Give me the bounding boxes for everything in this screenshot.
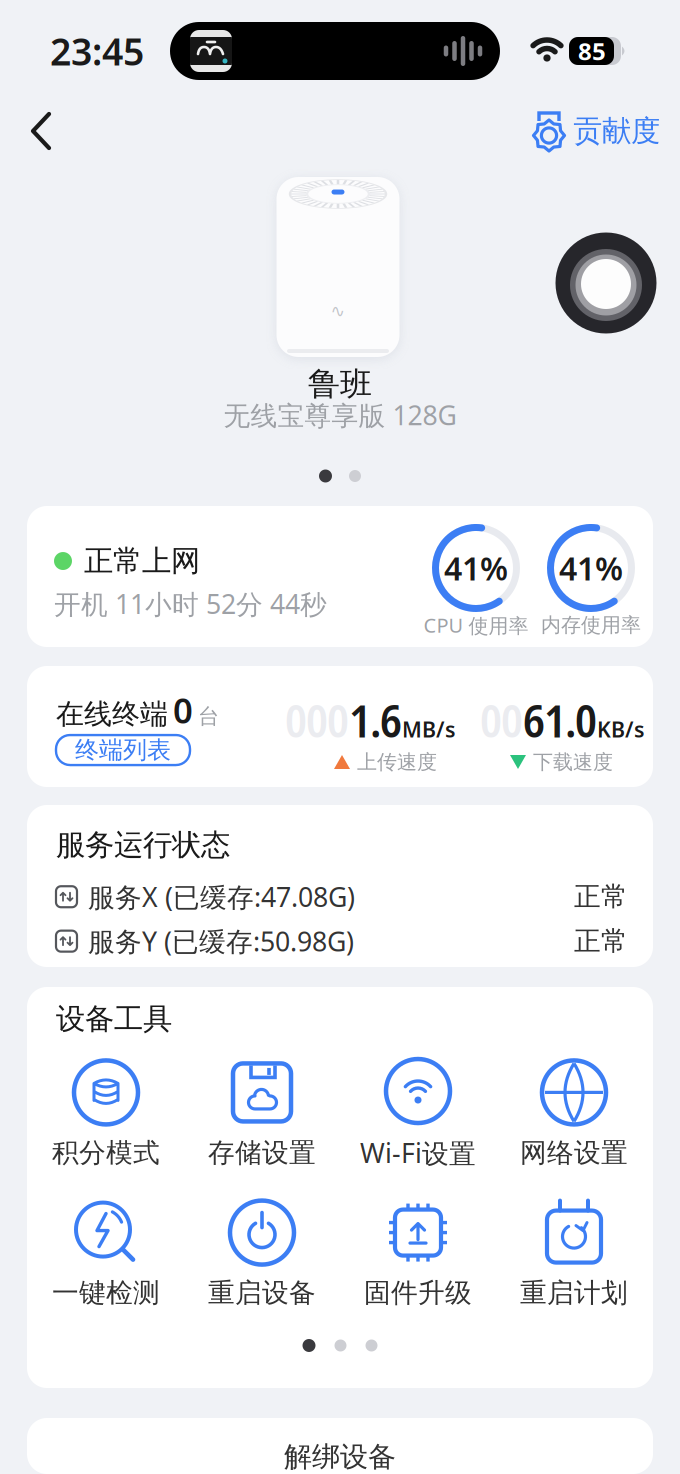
button[interactable]: Wi-Fi设置 bbox=[340, 1057, 496, 1171]
staticText: MB/s bbox=[402, 715, 456, 743]
staticText: 设备工具 bbox=[56, 1001, 172, 1037]
staticText: 下载速度 bbox=[533, 750, 613, 774]
staticText: 正常 bbox=[574, 880, 628, 913]
staticText: 41% bbox=[559, 547, 623, 589]
staticText: 61.0 bbox=[523, 690, 597, 750]
staticText: 重启计划 bbox=[520, 1277, 628, 1309]
staticText: KB/s bbox=[597, 715, 645, 743]
button[interactable]: Back bbox=[21, 102, 61, 160]
button[interactable]: 重启设备 bbox=[184, 1199, 340, 1309]
staticText: CPU 使用率 bbox=[423, 612, 528, 638]
button[interactable]: 贡献度 bbox=[530, 111, 660, 151]
staticText: 一键检测 bbox=[52, 1277, 160, 1309]
button[interactable]: 解绑设备 bbox=[27, 1418, 653, 1474]
staticText: 固件升级 bbox=[364, 1277, 472, 1309]
staticText: 解绑设备 bbox=[284, 1440, 396, 1474]
staticText: 23:45 bbox=[50, 26, 144, 76]
staticText: 无线宝尊享版 128G bbox=[223, 397, 456, 433]
button[interactable]: 存储设置 bbox=[184, 1058, 340, 1169]
staticText: 服务Y (已缓存:50.98G) bbox=[88, 923, 354, 959]
button[interactable]: 网络设置 bbox=[496, 1058, 652, 1169]
button[interactable]: 重启计划 bbox=[496, 1199, 652, 1309]
staticText: 积分模式 bbox=[52, 1136, 160, 1169]
staticText: 服务X (已缓存:47.08G) bbox=[88, 879, 355, 914]
staticText: 贡献度 bbox=[573, 113, 660, 149]
button[interactable]: 一键检测 bbox=[28, 1199, 184, 1309]
staticText: Wi-Fi设置 bbox=[360, 1135, 476, 1171]
staticText: 000 bbox=[285, 690, 349, 750]
staticText: 1.6 bbox=[349, 690, 402, 750]
staticText: 服务运行状态 bbox=[56, 827, 230, 863]
staticText: 在线终端 bbox=[56, 697, 168, 731]
staticText: 台 bbox=[198, 703, 219, 729]
staticText: 终端列表 bbox=[75, 735, 171, 765]
button[interactable]: 终端列表 bbox=[56, 735, 190, 765]
staticText: 85 bbox=[578, 35, 606, 67]
staticText: 正常上网 bbox=[84, 543, 200, 579]
staticText: 鲁班 bbox=[308, 364, 372, 404]
staticText: 正常 bbox=[574, 925, 628, 958]
staticText: 开机 11小时 52分 44秒 bbox=[54, 586, 327, 621]
button[interactable]: 固件升级 bbox=[340, 1199, 496, 1309]
staticText: 存储设置 bbox=[208, 1136, 316, 1169]
staticText: ∿ bbox=[330, 301, 345, 321]
staticText: 41% bbox=[444, 547, 508, 589]
staticText: 上传速度 bbox=[357, 750, 437, 774]
button[interactable]: 积分模式 bbox=[28, 1058, 184, 1169]
staticText: 00 bbox=[480, 690, 523, 750]
staticText: 0 bbox=[173, 687, 193, 733]
staticText: 网络设置 bbox=[520, 1136, 628, 1169]
staticText: 内存使用率 bbox=[541, 613, 641, 637]
staticText: 重启设备 bbox=[208, 1277, 316, 1309]
